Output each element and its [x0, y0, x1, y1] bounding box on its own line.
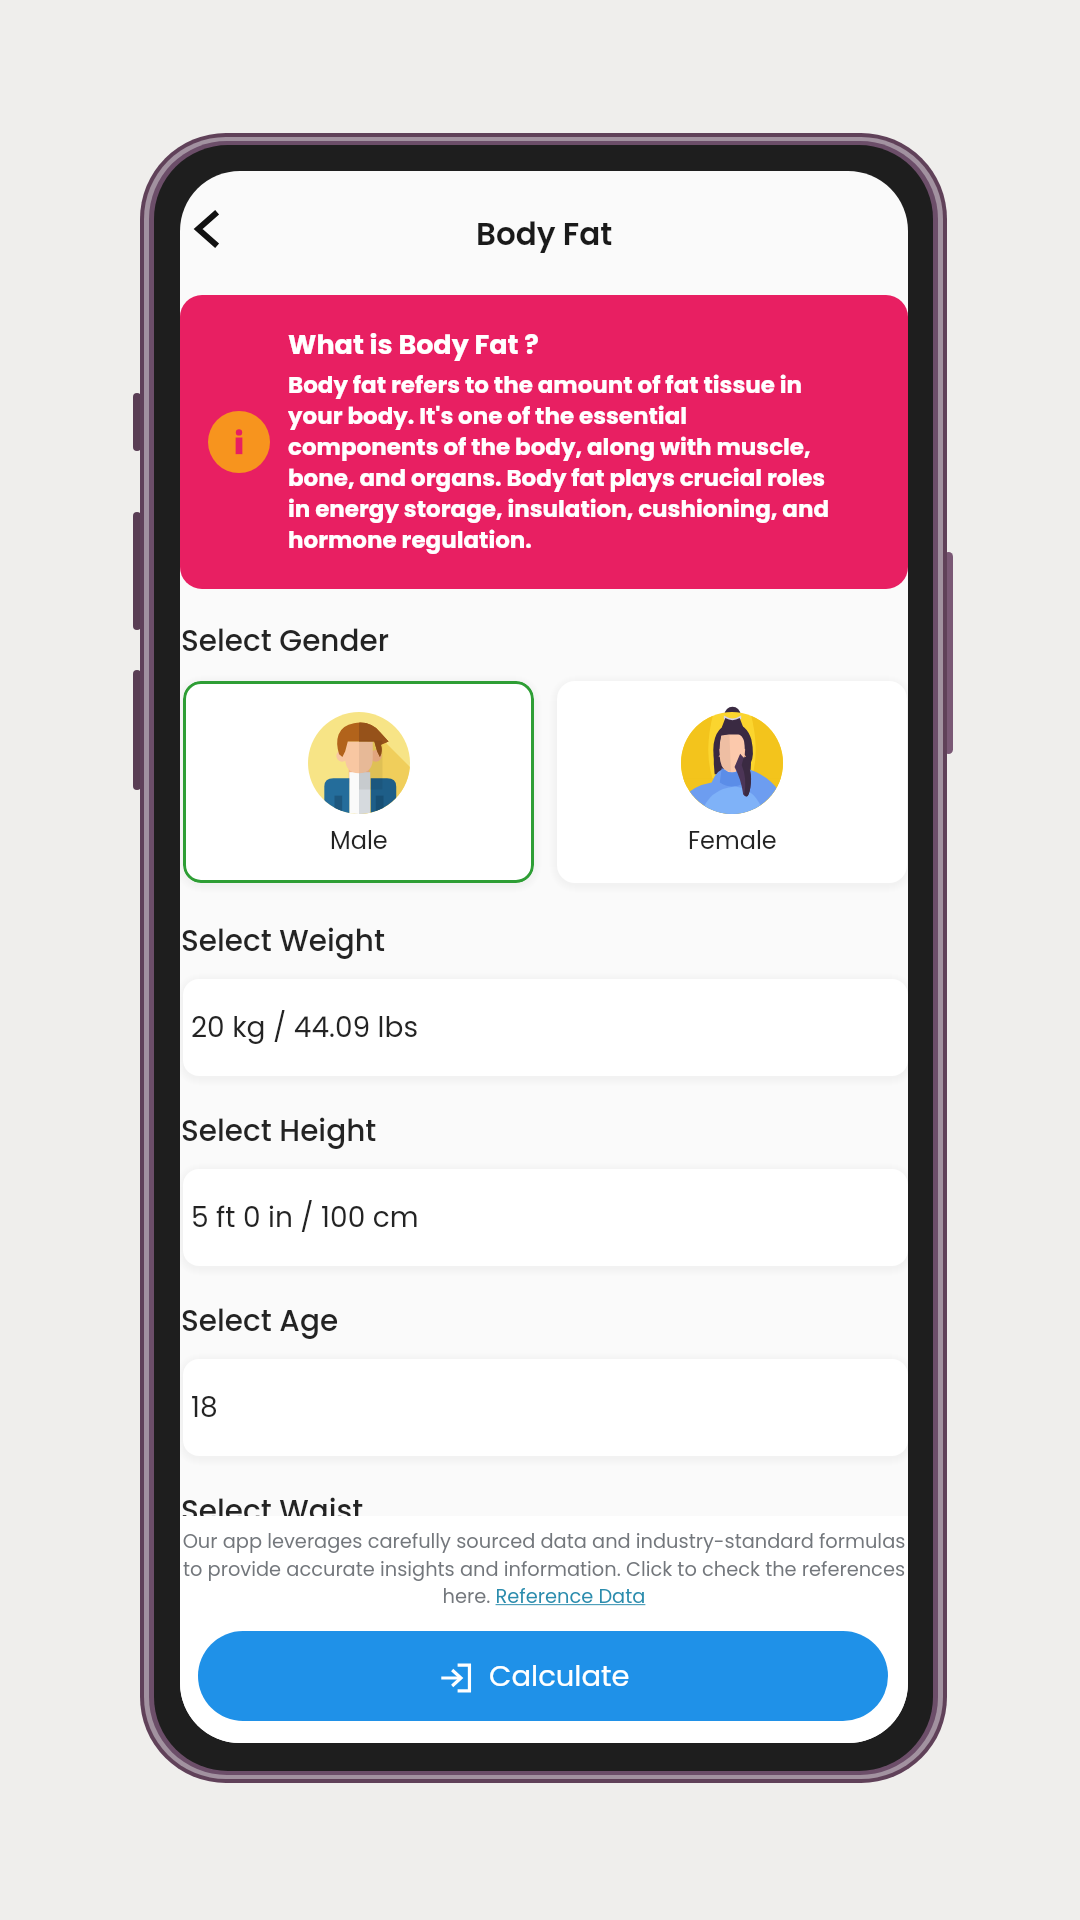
- button[interactable]: 5 ft 0 in / 100 cm: [183, 1169, 908, 1266]
- staticText: Select Gender: [181, 620, 390, 661]
- button[interactable]: Female: [557, 681, 907, 883]
- button[interactable]: Calculate: [198, 1631, 888, 1721]
- button[interactable]: 20 kg / 44.09 lbs: [183, 979, 908, 1076]
- staticText: Body Fat: [476, 212, 613, 255]
- button[interactable]: Male: [183, 681, 534, 883]
- staticText: 5 ft 0 in / 100 cm: [191, 1198, 419, 1237]
- staticText: 20 kg / 44.09 lbs: [191, 1008, 419, 1047]
- staticText: 18: [191, 1388, 218, 1427]
- staticText: Our app leverages carefully sourced data…: [180, 1528, 908, 1610]
- staticText: Calculate: [489, 1656, 630, 1697]
- staticText: Select Waist: [181, 1490, 364, 1531]
- staticText: Female: [688, 824, 777, 858]
- staticText: Select Age: [181, 1300, 339, 1341]
- staticText: Male: [330, 824, 388, 858]
- staticText: Select Height: [181, 1110, 377, 1151]
- staticText: What is Body Fat ?: [288, 326, 539, 364]
- staticText: Body fat refers to the amount of fat tis…: [288, 369, 833, 556]
- button[interactable]: Back: [180, 195, 242, 263]
- staticText: Select Weight: [181, 920, 385, 961]
- button[interactable]: 18: [183, 1359, 908, 1456]
